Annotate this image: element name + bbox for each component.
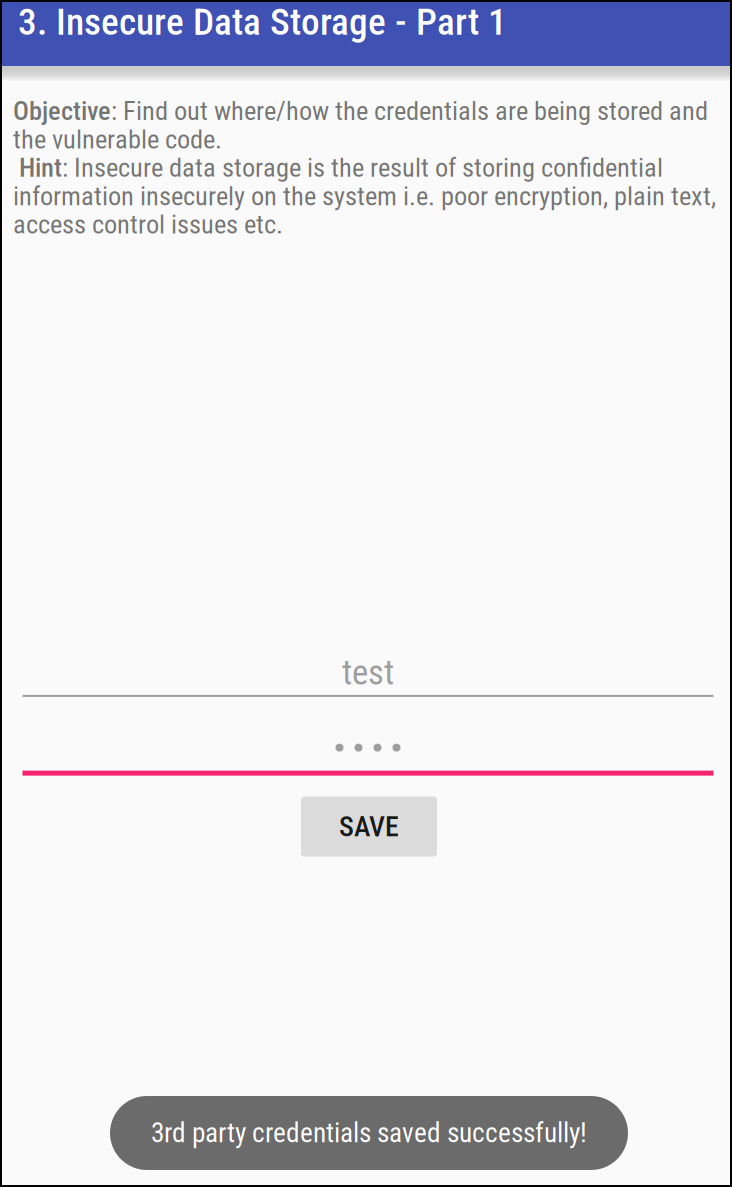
staticText: 3rd party credentials saved successfully…: [151, 1117, 587, 1149]
staticText: test: [342, 652, 394, 693]
staticText: Objective: Find out where/how the creden…: [13, 96, 716, 240]
staticText: SAVE: [339, 810, 399, 843]
staticText: 3. Insecure Data Storage - Part 1: [18, 0, 507, 44]
button[interactable]: SAVE: [301, 797, 437, 857]
